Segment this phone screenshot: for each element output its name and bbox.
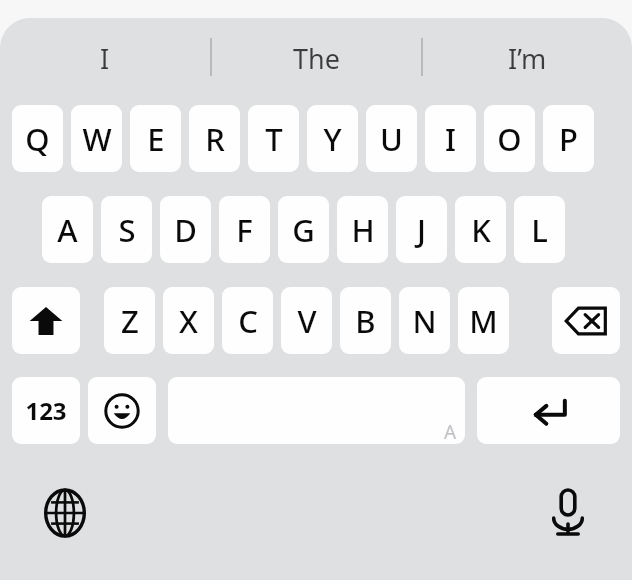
button[interactable]: E (130, 105, 181, 172)
button[interactable]: Emoji (88, 377, 156, 444)
button[interactable]: P (543, 105, 594, 172)
button[interactable]: Space (168, 377, 465, 444)
button[interactable]: Backspace (552, 287, 620, 354)
button[interactable]: I’m (437, 34, 617, 82)
button[interactable]: B (340, 287, 391, 354)
staticText: C (238, 300, 258, 342)
staticText: T (265, 118, 283, 160)
button[interactable]: W (71, 105, 122, 172)
staticText: Z (121, 300, 139, 342)
button[interactable]: H (337, 196, 388, 263)
button[interactable]: D (160, 196, 211, 263)
button[interactable]: 123 (12, 377, 80, 444)
button[interactable]: I (15, 34, 195, 82)
button[interactable]: R (189, 105, 240, 172)
staticText: S (118, 209, 136, 251)
staticText: R (205, 118, 225, 160)
staticText: A (444, 419, 457, 444)
staticText: D (174, 209, 197, 251)
staticText: J (417, 209, 426, 251)
button[interactable]: The (226, 34, 406, 82)
button[interactable]: V (281, 287, 332, 354)
staticText: I’m (508, 40, 547, 77)
button[interactable]: Q (12, 105, 63, 172)
staticText: I (445, 118, 456, 160)
staticText: I (100, 40, 110, 77)
button[interactable]: N (399, 287, 450, 354)
button[interactable]: A (42, 196, 93, 263)
staticText: P (559, 118, 578, 160)
staticText: B (355, 300, 376, 342)
staticText: Q (25, 118, 50, 160)
button[interactable]: Z (104, 287, 155, 354)
staticText: G (292, 209, 315, 251)
staticText: V (297, 300, 317, 342)
button[interactable]: I (425, 105, 476, 172)
staticText: N (412, 300, 437, 342)
staticText: W (82, 118, 112, 160)
staticText: U (380, 118, 403, 160)
button[interactable]: Return (477, 377, 620, 444)
button[interactable]: C (222, 287, 273, 354)
button[interactable]: K (455, 196, 506, 263)
button[interactable]: O (484, 105, 535, 172)
button[interactable]: Y (307, 105, 358, 172)
staticText: X (179, 300, 198, 342)
button[interactable]: L (514, 196, 565, 263)
button[interactable]: G (278, 196, 329, 263)
staticText: Y (323, 118, 342, 160)
staticText: 123 (25, 394, 67, 427)
staticText: F (236, 209, 253, 251)
button[interactable]: Voice input (538, 483, 598, 543)
staticText: L (531, 209, 548, 251)
button[interactable]: F (219, 196, 270, 263)
staticText: M (469, 300, 498, 342)
button[interactable]: Change keyboard language (35, 483, 95, 543)
staticText: K (471, 209, 491, 251)
staticText: H (351, 209, 375, 251)
staticText: E (147, 118, 165, 160)
button[interactable]: S (101, 196, 152, 263)
button[interactable]: U (366, 105, 417, 172)
button[interactable]: Shift (12, 287, 80, 354)
button[interactable]: M (458, 287, 509, 354)
staticText: O (497, 118, 522, 160)
staticText: A (57, 209, 78, 251)
staticText: The (293, 40, 340, 77)
button[interactable]: J (396, 196, 447, 263)
button[interactable]: X (163, 287, 214, 354)
button[interactable]: T (248, 105, 299, 172)
